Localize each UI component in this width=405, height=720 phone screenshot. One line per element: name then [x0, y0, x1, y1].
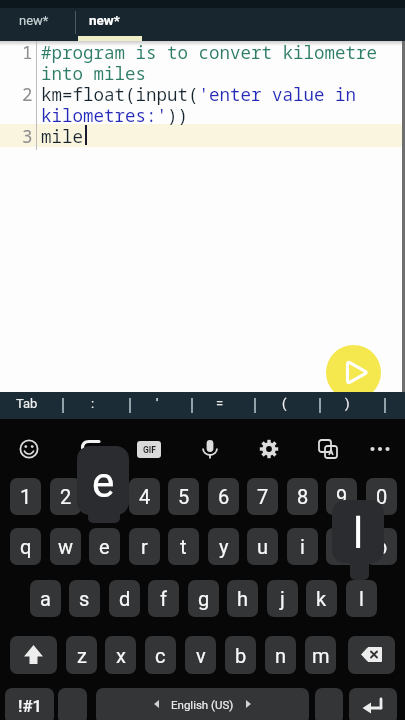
button[interactable]: m	[305, 636, 336, 674]
button[interactable]: f	[148, 580, 179, 617]
button[interactable]: t	[168, 528, 199, 565]
staticText: a	[40, 587, 51, 610]
button[interactable]: English (US)	[96, 688, 309, 720]
button[interactable]: s	[69, 580, 100, 617]
button[interactable]	[62, 392, 129, 419]
button[interactable]: c	[145, 636, 176, 674]
button[interactable]: d	[109, 580, 140, 617]
staticText: b	[235, 644, 247, 667]
staticText: English (US)	[171, 698, 234, 711]
button[interactable]	[313, 434, 343, 464]
button[interactable]: !#1	[5, 688, 54, 720]
staticText: k	[316, 587, 327, 610]
button[interactable]: 1	[10, 478, 41, 515]
staticText: m	[312, 644, 330, 667]
button[interactable]	[315, 688, 343, 720]
staticText: q	[20, 535, 32, 558]
staticText: w	[58, 535, 74, 558]
staticText: y	[219, 535, 229, 558]
button[interactable]	[191, 392, 254, 419]
staticText: (	[282, 396, 287, 411]
button[interactable]: 5	[168, 478, 199, 515]
staticText: 7	[257, 485, 269, 508]
button[interactable]: 8	[287, 478, 318, 515]
button[interactable]: GIF	[137, 441, 161, 458]
button[interactable]	[326, 345, 381, 400]
staticText: r	[141, 535, 148, 558]
button[interactable]: l	[346, 580, 377, 617]
button[interactable]: r	[129, 528, 160, 565]
button[interactable]	[129, 392, 191, 419]
staticText: f	[160, 587, 167, 610]
button[interactable]	[58, 688, 87, 720]
button[interactable]: p	[366, 528, 397, 565]
staticText: mile	[41, 124, 83, 148]
staticText: 8	[297, 485, 309, 508]
staticText: t	[180, 535, 187, 558]
button[interactable]	[195, 434, 225, 464]
button[interactable]: u	[247, 528, 278, 565]
staticText: 2	[22, 82, 33, 106]
button[interactable]: 4	[129, 478, 160, 515]
button[interactable]	[254, 434, 284, 464]
staticText: x	[116, 644, 126, 667]
button[interactable]: 3	[89, 478, 120, 515]
staticText: #program is to convert kilometre	[41, 40, 377, 64]
staticText: 1	[20, 485, 32, 508]
staticText: 9	[336, 485, 348, 508]
staticText: s	[79, 587, 90, 610]
staticText: u	[257, 535, 269, 558]
button[interactable]: w	[50, 528, 81, 565]
button[interactable]: g	[188, 580, 219, 617]
button[interactable]	[10, 636, 57, 674]
button[interactable]	[384, 392, 405, 419]
staticText: )	[345, 396, 350, 411]
button[interactable]	[349, 688, 397, 720]
staticText: g	[198, 587, 210, 610]
staticText: =	[216, 396, 224, 411]
button[interactable]	[76, 437, 104, 465]
button[interactable]	[254, 392, 319, 419]
button[interactable]: n	[265, 636, 296, 674]
button[interactable]: 6	[208, 478, 239, 515]
button[interactable]	[14, 434, 44, 464]
staticText: l	[353, 509, 364, 558]
button[interactable]: 7	[247, 478, 278, 515]
button[interactable]: b	[225, 636, 256, 674]
staticText: 0	[376, 485, 388, 508]
button[interactable]	[4, 8, 70, 41]
button[interactable]: a	[30, 580, 61, 617]
staticText: 6	[218, 485, 230, 508]
staticText: new*	[89, 12, 120, 28]
button[interactable]: i	[287, 528, 318, 565]
button[interactable]	[348, 636, 395, 674]
button[interactable]: k	[306, 580, 337, 617]
staticText: 4	[139, 485, 151, 508]
staticText: n	[275, 644, 287, 667]
button[interactable]	[78, 8, 144, 41]
staticText: j	[280, 587, 285, 610]
staticText: '	[156, 396, 159, 411]
button[interactable]	[365, 434, 395, 464]
button[interactable]	[0, 392, 62, 419]
button[interactable]: 9	[326, 478, 357, 515]
button[interactable]: 2	[50, 478, 81, 515]
staticText: p	[376, 535, 388, 558]
button[interactable]: e	[89, 528, 120, 565]
staticText: kilometres:'))	[41, 103, 188, 127]
button[interactable]	[319, 392, 384, 419]
button[interactable]: x	[105, 636, 136, 674]
staticText: e	[99, 535, 110, 558]
staticText: km=float(input('enter value in	[41, 82, 356, 106]
button[interactable]: j	[267, 580, 298, 617]
staticText: z	[77, 644, 87, 667]
button[interactable]: y	[208, 528, 239, 565]
button[interactable]: o	[326, 528, 357, 565]
button[interactable]: h	[227, 580, 258, 617]
button[interactable]: v	[185, 636, 216, 674]
staticText: 1	[22, 40, 33, 64]
button[interactable]: 0	[366, 478, 397, 515]
button[interactable]: q	[10, 528, 41, 565]
button[interactable]: z	[66, 636, 97, 674]
